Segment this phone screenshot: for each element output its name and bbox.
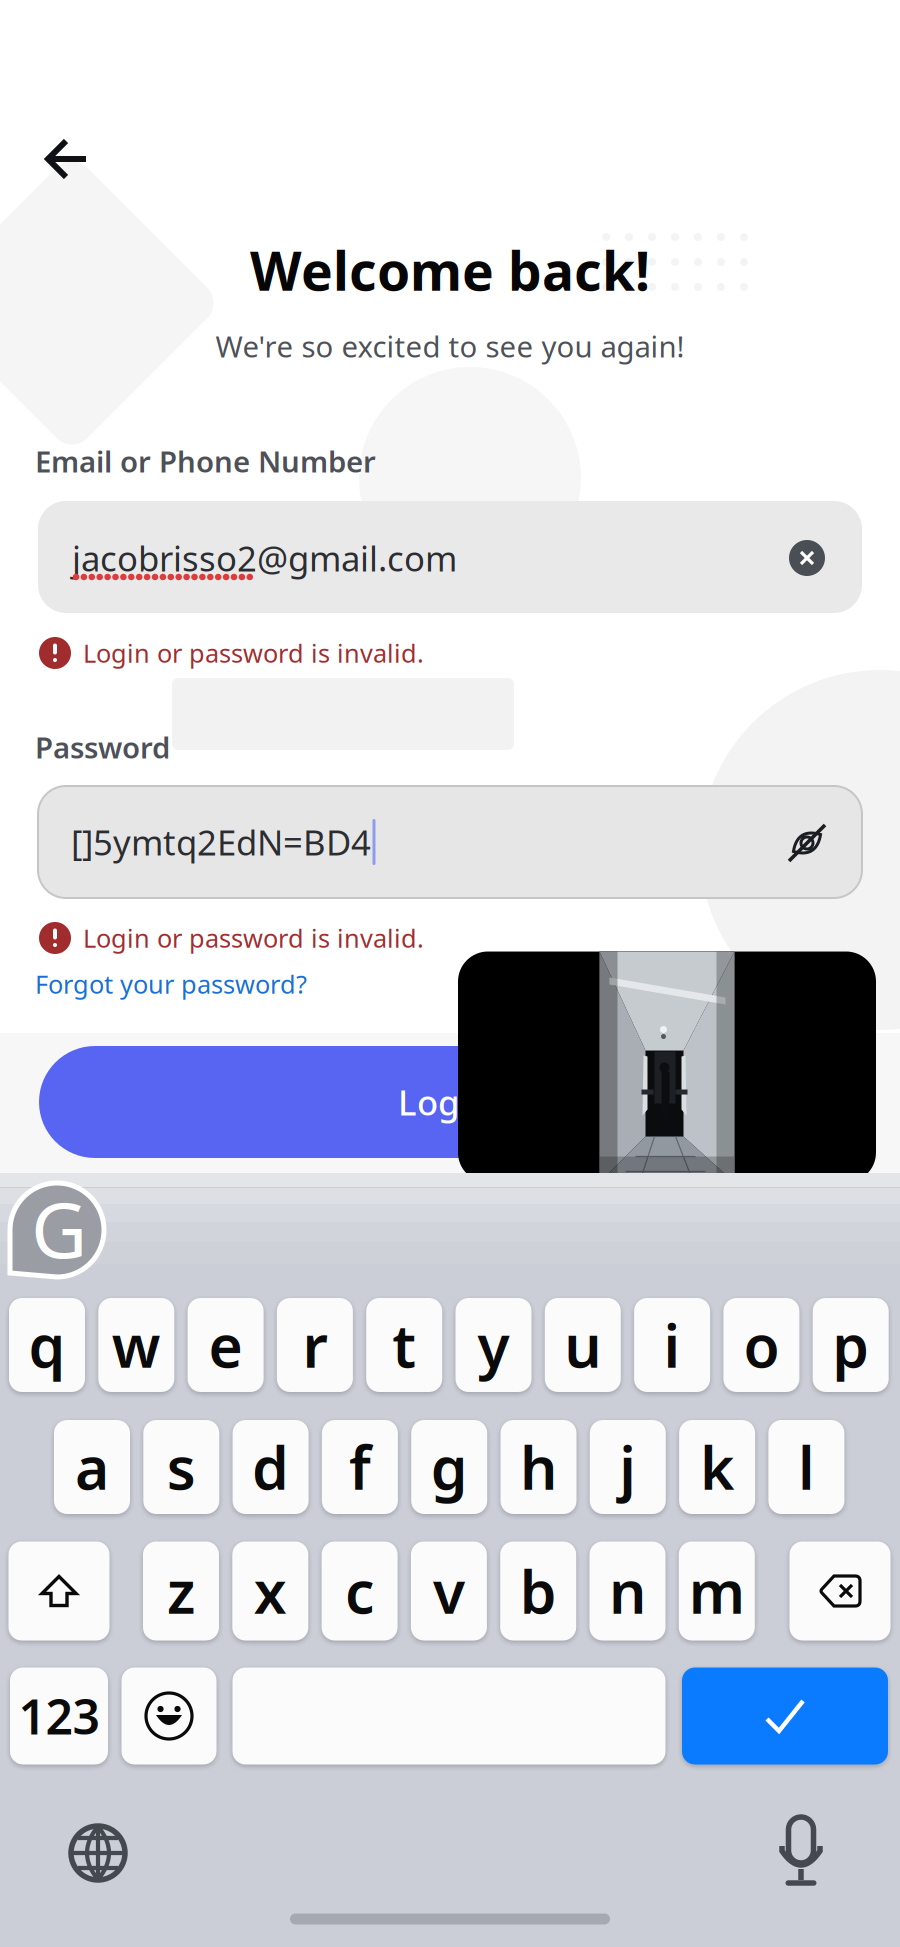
staticText: n xyxy=(609,1552,646,1630)
staticText: e xyxy=(209,1306,243,1384)
button[interactable]: 123 xyxy=(10,1667,108,1764)
staticText: p xyxy=(832,1306,869,1384)
button[interactable]: Dictation xyxy=(773,1815,829,1889)
staticText: We're so excited to see you again! xyxy=(215,326,684,365)
staticText: u xyxy=(564,1306,601,1384)
button[interactable]: f xyxy=(322,1420,398,1514)
button[interactable]: Shift xyxy=(8,1541,109,1640)
staticText: Login or password is invalid. xyxy=(83,636,424,670)
button[interactable]: b xyxy=(500,1541,576,1640)
button[interactable]: u xyxy=(545,1298,621,1392)
staticText: v xyxy=(433,1552,465,1630)
staticText: j xyxy=(619,1428,636,1506)
staticText: h xyxy=(520,1428,557,1506)
staticText: i xyxy=(664,1306,681,1384)
staticText: []5ymtq2EdN=BD4 xyxy=(71,819,371,865)
button[interactable]: k xyxy=(679,1420,755,1514)
staticText: b xyxy=(520,1552,557,1630)
staticText: Email or Phone Number xyxy=(35,441,376,480)
staticText: x xyxy=(254,1552,287,1630)
staticText: t xyxy=(392,1306,416,1384)
button[interactable]: l xyxy=(768,1420,844,1514)
button[interactable]: e xyxy=(188,1298,264,1392)
staticText: g xyxy=(431,1428,468,1506)
button[interactable]: t xyxy=(366,1298,442,1392)
button[interactable]: r xyxy=(277,1298,353,1392)
button[interactable] xyxy=(232,1667,665,1764)
button[interactable]: n xyxy=(589,1541,665,1640)
staticText: c xyxy=(345,1552,374,1630)
button[interactable]: a xyxy=(54,1420,130,1514)
button[interactable]: Switch keyboard xyxy=(67,1822,129,1884)
button[interactable]: s xyxy=(143,1420,219,1514)
button[interactable]: h xyxy=(500,1420,576,1514)
staticText: a xyxy=(75,1428,109,1506)
button[interactable]: q xyxy=(9,1298,85,1392)
button[interactable]: d xyxy=(233,1420,309,1514)
staticText: Forgot your password? xyxy=(35,967,307,1001)
staticText: y xyxy=(477,1306,509,1384)
button[interactable]: v xyxy=(411,1541,487,1640)
staticText: 123 xyxy=(18,1684,99,1748)
button[interactable]: w xyxy=(98,1298,174,1392)
button[interactable]: p xyxy=(813,1298,889,1392)
staticText: q xyxy=(28,1306,65,1384)
staticText: k xyxy=(700,1428,734,1506)
button[interactable]: Show password xyxy=(783,819,831,867)
staticText: Login or password is invalid. xyxy=(83,921,424,955)
staticText: s xyxy=(167,1428,196,1506)
button[interactable]: Log In xyxy=(39,1046,861,1158)
button[interactable]: x xyxy=(232,1541,308,1640)
staticText: Log In xyxy=(398,1079,502,1125)
staticText: jacobrisso2@gmail.com xyxy=(72,535,457,581)
staticText: f xyxy=(349,1428,371,1506)
button[interactable]: Clear text xyxy=(785,536,829,580)
staticText: w xyxy=(112,1306,161,1384)
button[interactable]: c xyxy=(322,1541,398,1640)
staticText: d xyxy=(252,1428,289,1506)
staticText: G xyxy=(31,1177,87,1279)
button[interactable]: y xyxy=(455,1298,531,1392)
staticText: Welcome back! xyxy=(250,235,650,305)
button[interactable]: i xyxy=(634,1298,710,1392)
button[interactable]: z xyxy=(143,1541,219,1640)
staticText: m xyxy=(689,1552,745,1630)
button[interactable]: Delete xyxy=(789,1541,890,1640)
button[interactable]: Forgot your password? xyxy=(35,960,435,1008)
staticText: z xyxy=(167,1552,195,1630)
button[interactable]: m xyxy=(679,1541,755,1640)
staticText: r xyxy=(302,1306,327,1384)
button[interactable]: Back xyxy=(23,115,111,203)
button[interactable]: Return xyxy=(682,1667,888,1764)
button[interactable]: o xyxy=(723,1298,799,1392)
staticText: l xyxy=(798,1428,815,1506)
staticText: Password xyxy=(35,727,170,766)
button[interactable]: g xyxy=(411,1420,487,1514)
button[interactable]: Emoji xyxy=(121,1667,216,1764)
button[interactable]: j xyxy=(590,1420,666,1514)
staticText: o xyxy=(743,1306,779,1384)
